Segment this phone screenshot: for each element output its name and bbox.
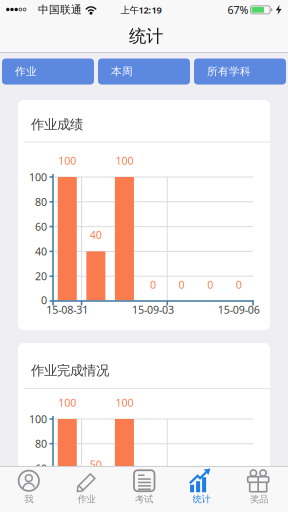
staticText: 考试 — [135, 493, 153, 505]
staticText: 15-09-03 — [132, 302, 174, 317]
staticText: 100 — [29, 412, 47, 426]
staticText: 0 — [236, 277, 242, 292]
staticText: 80 — [35, 437, 47, 451]
staticText: 上午12:19 — [120, 4, 161, 16]
staticText: 本周 — [111, 65, 133, 78]
button[interactable]: 作业 — [2, 58, 94, 84]
staticText: 统计 — [129, 26, 163, 47]
staticText: 所有学科 — [207, 65, 251, 78]
button[interactable]: 作业 — [58, 467, 115, 512]
staticText: 100 — [58, 153, 76, 168]
staticText: 统计 — [193, 493, 211, 505]
staticText: 奖品 — [250, 493, 268, 505]
staticText: 100 — [115, 395, 133, 410]
staticText: 100 — [115, 153, 133, 168]
staticText: 60 — [35, 461, 47, 475]
staticText: 50 — [90, 457, 102, 471]
staticText: 作业成绩 — [31, 116, 83, 133]
staticText: 作业完成情况 — [31, 362, 109, 379]
staticText: 0 — [41, 293, 47, 307]
staticText: 60 — [35, 219, 47, 234]
button[interactable]: 考试 — [115, 467, 173, 512]
staticText: 作业 — [77, 493, 95, 505]
staticText: 中国联通 — [38, 3, 82, 16]
staticText: 我 — [24, 493, 33, 505]
staticText: 作业 — [15, 65, 37, 78]
button[interactable]: 所有学科 — [194, 58, 286, 84]
button[interactable]: 奖品 — [230, 467, 288, 512]
staticText: 20 — [35, 269, 47, 283]
staticText: 15-09-06 — [218, 302, 260, 317]
staticText: 15-08-31 — [46, 302, 88, 317]
staticText: 80 — [35, 195, 47, 209]
staticText: 40 — [90, 228, 102, 242]
staticText: 0 — [150, 277, 156, 292]
staticText: 67% — [227, 3, 248, 17]
staticText: 0 — [207, 277, 213, 292]
staticText: 0 — [179, 277, 185, 292]
staticText: 40 — [35, 244, 47, 258]
staticText: 100 — [29, 170, 47, 184]
button[interactable]: 统计 — [173, 467, 230, 512]
button[interactable]: 本周 — [98, 58, 190, 84]
staticText: 100 — [58, 395, 76, 410]
button[interactable]: 我 — [0, 467, 58, 512]
